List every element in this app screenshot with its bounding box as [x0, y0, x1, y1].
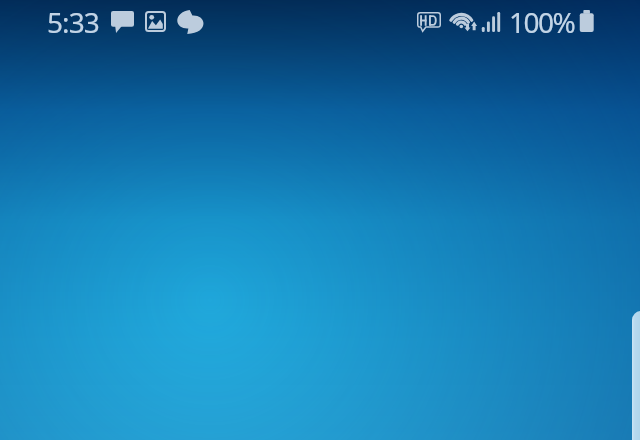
staticText: 100% [509, 3, 575, 41]
button[interactable]: Mobile signal full [481, 12, 501, 32]
button[interactable]: HD voice calling [417, 12, 441, 32]
button[interactable]: Battery full [579, 10, 594, 32]
button[interactable]: Open panel [632, 311, 640, 440]
button[interactable]: Messages [111, 11, 134, 33]
button[interactable]: Bounce [177, 10, 204, 34]
staticText: 5:33 [47, 3, 99, 41]
button[interactable]: Wi-Fi connected [448, 10, 477, 32]
button[interactable]: Screenshot [145, 11, 166, 32]
